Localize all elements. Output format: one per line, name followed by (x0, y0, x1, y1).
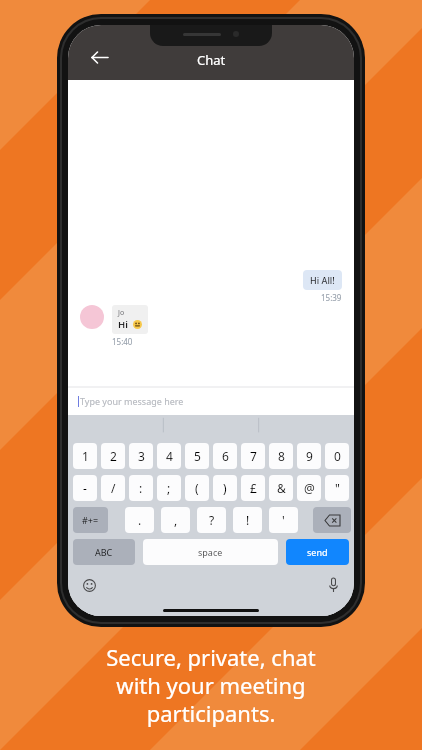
button[interactable]: 0 (325, 443, 349, 469)
button[interactable]: 5 (185, 443, 209, 469)
staticText: 9 (306, 448, 313, 464)
button[interactable]: ) (213, 475, 237, 501)
staticText: 3 (138, 448, 145, 464)
button[interactable]: send (286, 539, 349, 565)
button[interactable]: ! (233, 507, 262, 533)
button[interactable]: ; (157, 475, 181, 501)
staticText: #+= (82, 514, 99, 526)
staticText: 2 (110, 448, 117, 464)
button[interactable]: space (143, 539, 278, 565)
staticText: - (83, 480, 87, 496)
button[interactable]: Voice input (320, 572, 346, 598)
staticText: Hi (118, 318, 128, 331)
staticText: ' (282, 512, 285, 528)
staticText: 0 (334, 448, 341, 464)
button[interactable]: 8 (269, 443, 293, 469)
button[interactable]: Hi All! (310, 274, 335, 286)
button[interactable]: Jo (118, 308, 142, 331)
button[interactable]: 1 (73, 443, 97, 469)
staticText: ? (209, 512, 215, 528)
staticText: ABC (95, 546, 113, 558)
staticText: ) (223, 480, 227, 496)
button[interactable]: ? (197, 507, 226, 533)
staticText: Chat (197, 51, 226, 69)
button[interactable]: Type your message here (78, 395, 354, 407)
staticText: ! (246, 512, 250, 528)
staticText: space (198, 546, 223, 558)
button[interactable]: #+= (73, 507, 108, 533)
staticText: Jo (118, 308, 125, 318)
button[interactable]: 3 (129, 443, 153, 469)
staticText: / (111, 480, 116, 496)
button[interactable]: ' (269, 507, 298, 533)
button[interactable]: 2 (101, 443, 125, 469)
button[interactable]: Back (82, 40, 116, 74)
staticText: Secure, private, chat with your meeting … (106, 642, 316, 728)
button[interactable]: / (101, 475, 125, 501)
staticText: 6 (222, 448, 229, 464)
button[interactable]: 6 (213, 443, 237, 469)
staticText: 8 (278, 448, 285, 464)
staticText: send (307, 546, 328, 558)
staticText: 15:40 (112, 336, 133, 347)
button[interactable]: , (161, 507, 190, 533)
staticText: @ (304, 480, 315, 496)
button[interactable]: ABC (73, 539, 135, 565)
staticText: ( (195, 480, 199, 496)
staticText: Hi All! (310, 274, 335, 286)
staticText: £ (250, 480, 257, 496)
staticText: , (174, 512, 178, 528)
staticText: 1 (82, 448, 89, 464)
button[interactable]: 9 (297, 443, 321, 469)
staticText: & (277, 480, 286, 496)
staticText: 7 (250, 448, 257, 464)
button[interactable]: . (125, 507, 154, 533)
staticText: ; (167, 480, 171, 496)
button[interactable]: 7 (241, 443, 265, 469)
button[interactable]: & (269, 475, 293, 501)
button[interactable]: Emoji (76, 572, 102, 598)
button[interactable]: - (73, 475, 97, 501)
button[interactable]: @ (297, 475, 321, 501)
staticText: : (139, 480, 143, 496)
button[interactable]: Backspace (313, 507, 351, 533)
button[interactable]: : (129, 475, 153, 501)
staticText: 5 (194, 448, 201, 464)
staticText: . (138, 512, 142, 528)
button[interactable]: £ (241, 475, 265, 501)
button[interactable]: ( (185, 475, 209, 501)
staticText: 4 (166, 448, 173, 464)
staticText: " (335, 480, 340, 496)
staticText: Type your message here (80, 395, 184, 407)
button[interactable]: " (325, 475, 349, 501)
button[interactable]: 4 (157, 443, 181, 469)
staticText: 15:39 (321, 292, 342, 303)
